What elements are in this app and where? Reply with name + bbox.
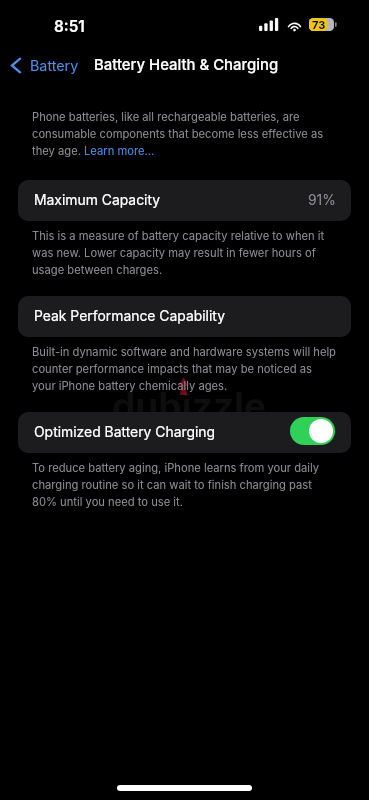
button[interactable]: Peak Performance Capability xyxy=(18,296,351,337)
staticText: To reduce battery aging, iPhone learns f… xyxy=(32,461,336,508)
button[interactable]: Optimized Battery Charging xyxy=(18,412,351,453)
staticText: Built-in dynamic software and hardware s… xyxy=(32,345,336,392)
staticText: Optimized Battery Charging xyxy=(34,424,216,441)
button[interactable]: Optimized Battery Charging toggle xyxy=(290,417,335,445)
staticText: Battery Health & Charging xyxy=(94,56,279,74)
staticText: Battery xyxy=(30,57,79,74)
staticText: 8:51 xyxy=(54,17,85,36)
button[interactable]: Maximum Capacity xyxy=(18,180,351,221)
button[interactable]: Battery xyxy=(0,52,87,79)
staticText: Phone batteries, like all rechargeable b… xyxy=(32,110,336,157)
staticText: This is a measure of battery capacity re… xyxy=(32,229,336,276)
staticText: Maximum Capacity xyxy=(34,192,161,209)
staticText: dubizzle xyxy=(112,383,267,428)
staticText: 73 xyxy=(312,18,326,31)
staticText: Peak Performance Capability xyxy=(34,308,225,325)
staticText: 91% xyxy=(308,192,336,209)
